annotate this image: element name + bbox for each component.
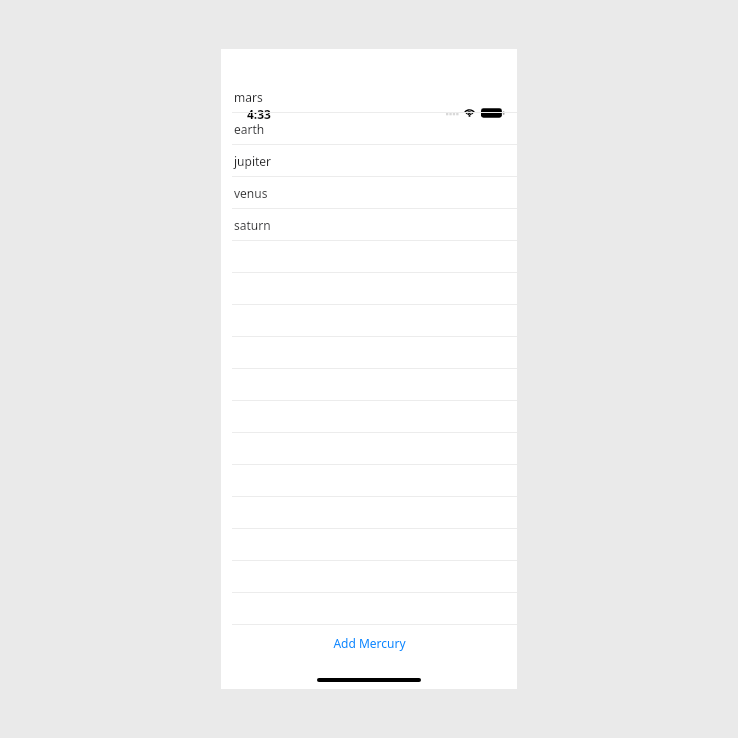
button[interactable]: mars xyxy=(221,81,517,113)
button[interactable]: Add Mercury xyxy=(221,617,517,669)
staticText: mars xyxy=(234,89,263,105)
staticText: Add Mercury xyxy=(333,635,406,651)
button[interactable]: earth xyxy=(221,113,517,145)
staticText: jupiter xyxy=(234,153,272,169)
staticText: 4:33 xyxy=(247,106,271,122)
button[interactable]: venus xyxy=(221,177,517,209)
staticText: earth xyxy=(234,121,265,137)
button[interactable]: jupiter xyxy=(221,145,517,177)
button[interactable]: saturn xyxy=(221,209,517,241)
staticText: venus xyxy=(234,185,268,201)
staticText: saturn xyxy=(234,217,271,233)
